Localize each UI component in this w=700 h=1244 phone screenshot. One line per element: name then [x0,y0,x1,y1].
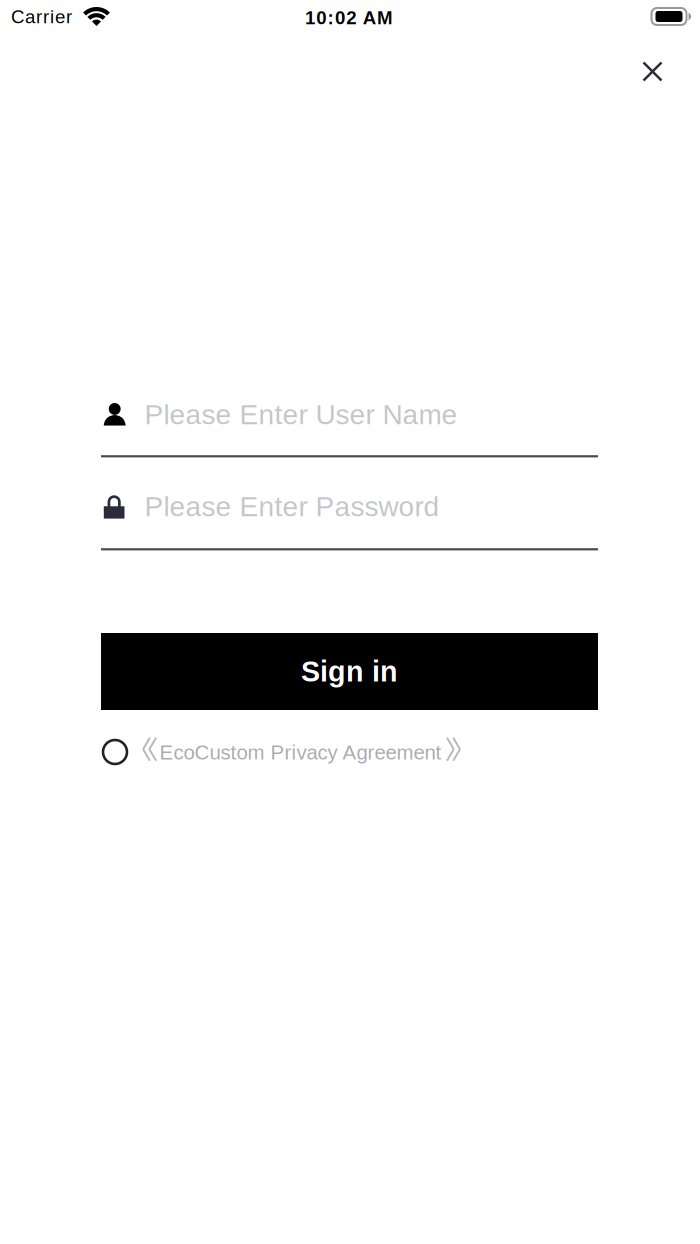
button[interactable]: Sign in [101,633,598,710]
staticText: Please Enter Password [145,491,440,522]
staticText: Sign in [301,655,398,687]
staticText: Carrier [11,6,72,27]
button[interactable]: Close [629,48,675,94]
staticText: EcoCustom Privacy Agreement [160,741,442,764]
button[interactable]: Password [101,491,598,550]
staticText: 10:02 AM [305,7,393,28]
staticText: Please Enter User Name [145,399,458,430]
button[interactable]: EcoCustom Privacy Agreement [102,739,464,767]
button[interactable]: User Name [101,399,598,457]
